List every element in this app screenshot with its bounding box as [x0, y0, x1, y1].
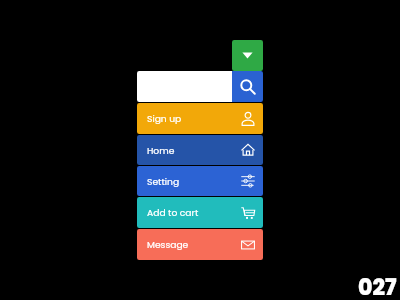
other: Cart	[241, 206, 255, 220]
button[interactable]: Search field	[137, 71, 232, 102]
button[interactable]: Sign up	[137, 103, 263, 134]
staticText: Sign up	[147, 112, 182, 125]
other: Message	[241, 238, 255, 252]
other: Home	[241, 143, 255, 157]
staticText: Add to cart	[147, 206, 199, 219]
button[interactable]: Home	[137, 135, 263, 165]
other: Settings	[241, 174, 255, 188]
button[interactable]: Dropdown	[232, 40, 263, 71]
staticText: Setting	[147, 175, 180, 188]
staticText: Home	[147, 144, 175, 157]
button[interactable]: Message	[137, 229, 263, 260]
button[interactable]: Setting	[137, 166, 263, 196]
button[interactable]: Add to cart	[137, 197, 263, 228]
staticText: 027	[358, 272, 397, 300]
other: Sign up	[241, 112, 255, 126]
button[interactable]: Search	[232, 71, 263, 102]
staticText: Message	[147, 238, 189, 251]
